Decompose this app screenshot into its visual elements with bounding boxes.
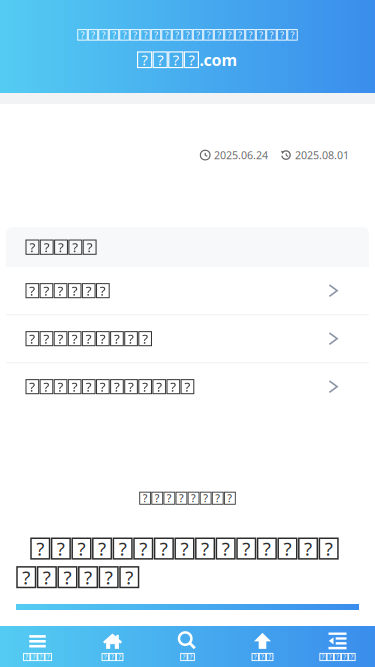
- staticText: ?: [77, 536, 85, 561]
- staticText: ?: [101, 29, 105, 41]
- staticText: ?: [63, 565, 71, 590]
- staticText: ?: [36, 536, 44, 561]
- staticText: ?: [191, 491, 196, 505]
- staticText: ?: [325, 536, 333, 561]
- staticText: ?: [40, 653, 43, 661]
- staticText: ?: [280, 29, 284, 41]
- staticText: ?: [336, 653, 339, 661]
- staticText: 2025.08.01: [295, 148, 349, 162]
- button[interactable]: Back to top: [225, 626, 300, 667]
- staticText: ?: [283, 536, 291, 561]
- staticText: ?: [184, 378, 190, 395]
- staticText: ?: [91, 29, 95, 41]
- staticText: ?: [139, 536, 147, 561]
- staticText: ?: [98, 536, 106, 561]
- staticText: ?: [80, 29, 84, 41]
- staticText: ?: [304, 536, 312, 561]
- staticText: ?: [175, 29, 179, 41]
- staticText: ?: [25, 653, 28, 661]
- staticText: ?: [173, 50, 179, 69]
- staticText: ?: [29, 330, 35, 347]
- staticText: ?: [22, 565, 30, 590]
- staticText: ?: [43, 378, 49, 395]
- staticText: ?: [167, 491, 172, 505]
- staticText: ?: [154, 29, 158, 41]
- staticText: ?: [104, 653, 107, 661]
- button[interactable]: ?: [6, 315, 369, 362]
- staticText: ?: [215, 491, 220, 505]
- staticText: ?: [44, 238, 50, 256]
- staticText: ?: [269, 29, 273, 41]
- staticText: ?: [111, 653, 114, 661]
- staticText: ?: [112, 29, 116, 41]
- staticText: ?: [254, 653, 257, 661]
- staticText: ?: [43, 565, 51, 590]
- staticText: ?: [118, 653, 121, 661]
- staticText: ?: [179, 491, 184, 505]
- staticText: ?: [86, 282, 92, 299]
- button[interactable]: Menu: [0, 626, 75, 667]
- staticText: ?: [47, 653, 50, 661]
- button[interactable]: ?: [6, 363, 369, 410]
- staticText: ?: [268, 653, 271, 661]
- staticText: ?: [142, 378, 148, 395]
- staticText: 2025.06.24: [214, 148, 268, 162]
- staticText: ?: [185, 29, 189, 41]
- staticText: ?: [43, 282, 49, 299]
- staticText: ?: [156, 378, 162, 395]
- staticText: ?: [190, 653, 193, 661]
- staticText: ?: [43, 330, 49, 347]
- staticText: ?: [259, 29, 263, 41]
- staticText: ?: [86, 378, 92, 395]
- staticText: ?: [128, 330, 134, 347]
- staticText: ?: [263, 536, 271, 561]
- staticText: ?: [201, 536, 209, 561]
- staticText: ?: [203, 491, 208, 505]
- staticText: ?: [222, 536, 230, 561]
- staticText: ?: [180, 536, 188, 561]
- button[interactable]: Catalog: [300, 626, 375, 667]
- staticText: ?: [58, 238, 64, 256]
- staticText: ?: [114, 330, 120, 347]
- staticText: ?: [182, 653, 185, 661]
- staticText: ?: [217, 29, 221, 41]
- staticText: ?: [29, 238, 35, 256]
- staticText: ?: [84, 565, 92, 590]
- staticText: ?: [119, 536, 127, 561]
- staticText: ?: [143, 29, 147, 41]
- staticText: ?: [133, 29, 137, 41]
- staticText: ?: [72, 378, 78, 395]
- staticText: ?: [142, 330, 148, 347]
- staticText: ?: [32, 653, 35, 661]
- staticText: ?: [290, 29, 294, 41]
- staticText: ?: [196, 29, 200, 41]
- button[interactable]: Home: [75, 626, 150, 667]
- staticText: ?: [72, 330, 78, 347]
- button[interactable]: ?: [6, 267, 369, 314]
- staticText: ?: [29, 378, 35, 395]
- staticText: ?: [350, 653, 353, 661]
- staticText: ?: [122, 29, 126, 41]
- staticText: ?: [100, 378, 106, 395]
- staticText: ?: [105, 565, 113, 590]
- staticText: ?: [142, 50, 148, 69]
- staticText: ?: [157, 50, 163, 69]
- staticText: ?: [114, 378, 120, 395]
- staticText: ?: [242, 536, 250, 561]
- staticText: ?: [57, 282, 63, 299]
- staticText: ?: [57, 330, 63, 347]
- staticText: ?: [29, 282, 35, 299]
- staticText: ?: [261, 653, 264, 661]
- staticText: ?: [227, 491, 232, 505]
- staticText: ?: [57, 378, 63, 395]
- staticText: ?: [164, 29, 168, 41]
- staticText: ?: [86, 330, 92, 347]
- staticText: .com: [199, 49, 237, 70]
- staticText: ?: [125, 565, 133, 590]
- button[interactable]: Search: [150, 626, 225, 667]
- staticText: ?: [128, 378, 134, 395]
- staticText: ?: [143, 491, 148, 505]
- staticText: ?: [343, 653, 346, 661]
- staticText: ?: [57, 536, 65, 561]
- staticText: ?: [72, 282, 78, 299]
